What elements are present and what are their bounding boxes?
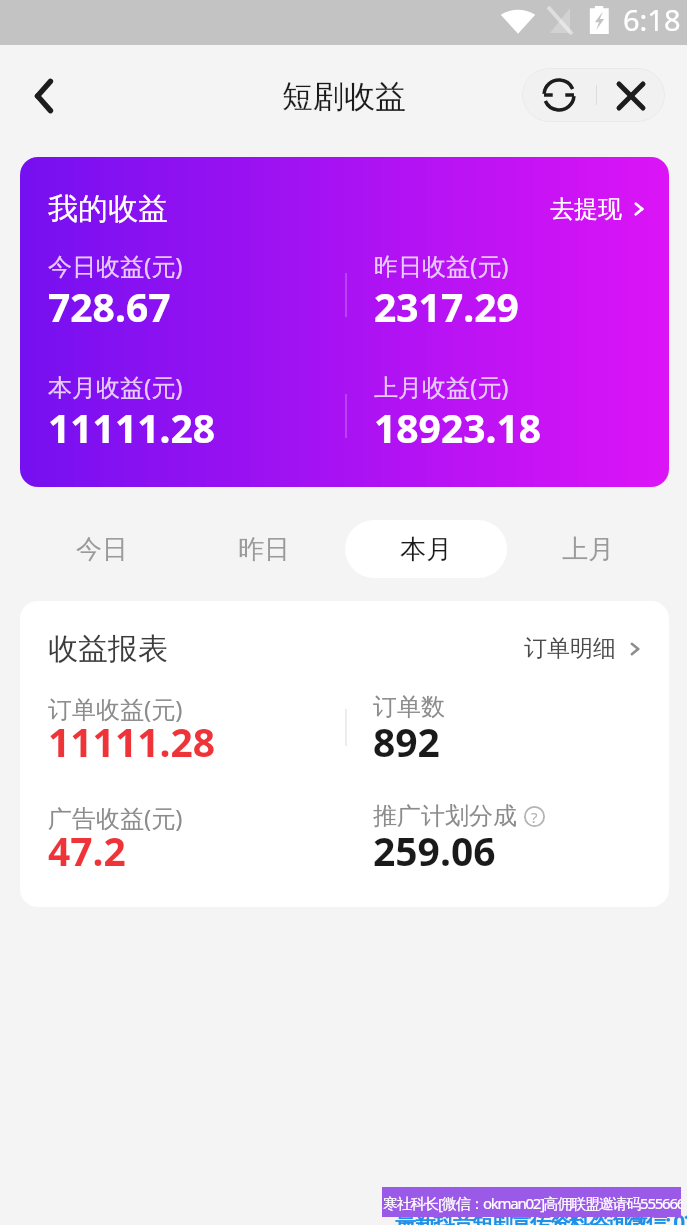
staticText: 收益报表 xyxy=(48,630,168,668)
button[interactable]: 订单明细 xyxy=(524,634,643,663)
staticText: 订单明细 xyxy=(524,634,616,663)
staticText: 昨日 xyxy=(238,533,290,566)
staticText: 18923.18 xyxy=(374,401,542,454)
staticText: 去提现 xyxy=(550,194,622,224)
staticText: 今日收益(元) xyxy=(48,249,183,282)
staticText: 6:18 xyxy=(623,0,681,39)
staticText: 2317.29 xyxy=(374,280,519,333)
staticText: 订单数 xyxy=(373,692,445,722)
staticText: 订单收益(元) xyxy=(48,692,183,725)
staticText: 最新抖音短剧宣传资料咨询微信: 020177217 xyxy=(395,1208,687,1225)
button[interactable]: 昨日 xyxy=(183,520,345,578)
staticText: 昨日收益(元) xyxy=(374,249,509,282)
staticText: 本月收益(元) xyxy=(48,370,183,403)
button[interactable]: 本月 xyxy=(345,520,507,578)
staticText: 今日 xyxy=(76,533,128,566)
button[interactable]: Refresh xyxy=(522,68,596,122)
staticText: 我的收益 xyxy=(48,190,168,228)
staticText: 推广计划分成 xyxy=(373,801,517,831)
button[interactable]: 上月 xyxy=(507,520,669,578)
staticText: 892 xyxy=(373,715,440,768)
button[interactable]: Close xyxy=(597,68,665,122)
staticText: 259.06 xyxy=(373,824,496,877)
staticText: ? xyxy=(531,807,538,827)
staticText: 广告收益(元) xyxy=(48,801,183,834)
button[interactable]: Back xyxy=(19,70,69,120)
staticText: 上月收益(元) xyxy=(374,370,509,403)
staticText: 47.2 xyxy=(48,824,126,877)
staticText: 寒社科长[微信：okman02]高佣联盟邀请码555666 xyxy=(383,1193,682,1213)
staticText: 728.67 xyxy=(48,280,171,333)
staticText: 11111.28 xyxy=(48,715,216,768)
staticText: 短剧收益 xyxy=(282,77,406,116)
staticText: 本月 xyxy=(400,533,452,566)
staticText: 11111.28 xyxy=(48,401,216,454)
button[interactable]: 去提现 xyxy=(550,194,647,224)
staticText: 上月 xyxy=(562,533,614,566)
button[interactable]: 今日 xyxy=(20,520,183,578)
